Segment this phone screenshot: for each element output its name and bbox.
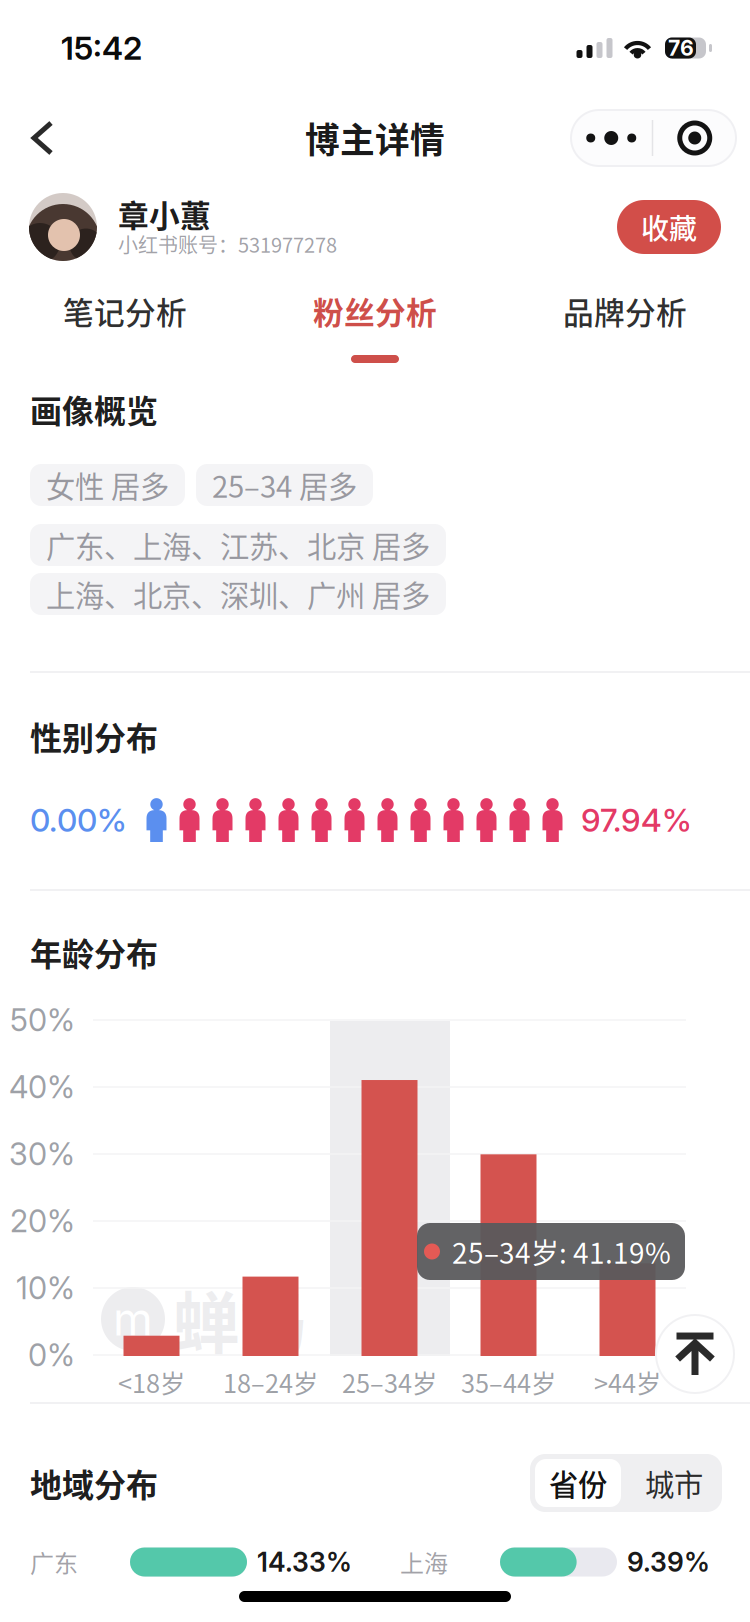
- staticText: 9.39%: [627, 1546, 710, 1578]
- staticText: m: [113, 1292, 153, 1346]
- staticText: 广东: [30, 1545, 78, 1579]
- staticText: 博主详情: [305, 113, 445, 163]
- staticText: 0.00%: [30, 801, 127, 839]
- staticText: 年龄分布: [30, 929, 158, 975]
- staticText: 10%: [16, 1269, 75, 1306]
- staticText: 城市: [645, 1462, 703, 1504]
- staticText: 15:42: [61, 29, 142, 67]
- staticText: 14.33%: [257, 1546, 352, 1578]
- staticText: 品牌分析: [563, 289, 687, 333]
- staticText: >44岁: [594, 1364, 661, 1400]
- staticText: 76: [668, 35, 694, 61]
- staticText: 30%: [9, 1135, 75, 1172]
- staticText: 0%: [28, 1336, 75, 1373]
- staticText: <18岁: [118, 1364, 185, 1400]
- button[interactable]: More: [571, 110, 652, 166]
- staticText: 25–34岁: 41.19%: [452, 1231, 671, 1272]
- staticText: 蝉妈: [173, 1271, 307, 1367]
- button[interactable]: 城市: [626, 1454, 722, 1512]
- staticText: 广东、上海、江苏、北京 居多: [46, 524, 430, 566]
- button[interactable]: 粉丝分析: [250, 274, 500, 348]
- button[interactable]: 品牌分析: [500, 274, 750, 348]
- staticText: 50%: [10, 1001, 75, 1038]
- staticText: 上海、北京、深圳、广州 居多: [46, 573, 430, 615]
- staticText: 章小蕙: [118, 192, 211, 236]
- staticText: 18–24岁: [223, 1364, 318, 1400]
- staticText: 画像概览: [30, 386, 158, 432]
- button[interactable]: Back: [0, 96, 81, 180]
- button[interactable]: 省份: [530, 1454, 626, 1512]
- staticText: 笔记分析: [63, 289, 187, 333]
- button[interactable]: Scroll to top: [656, 1315, 734, 1393]
- staticText: 25–34 居多: [212, 464, 357, 506]
- staticText: 性别分布: [30, 713, 158, 759]
- button[interactable]: 收藏: [617, 200, 721, 254]
- staticText: 地域分布: [30, 1460, 158, 1506]
- button[interactable]: Close: [653, 110, 736, 166]
- staticText: 40%: [9, 1068, 75, 1105]
- staticText: 20%: [10, 1202, 75, 1239]
- staticText: 35–44岁: [461, 1364, 556, 1400]
- staticText: 省份: [549, 1462, 607, 1504]
- staticText: 25–34岁: [342, 1364, 437, 1400]
- button[interactable]: 笔记分析: [0, 274, 250, 348]
- staticText: 小红书账号：531977278: [118, 229, 337, 258]
- staticText: 97.94%: [581, 801, 692, 839]
- staticText: 粉丝分析: [313, 289, 437, 333]
- staticText: 收藏: [641, 207, 697, 247]
- staticText: 女性 居多: [46, 464, 169, 506]
- staticText: 上海: [400, 1545, 448, 1579]
